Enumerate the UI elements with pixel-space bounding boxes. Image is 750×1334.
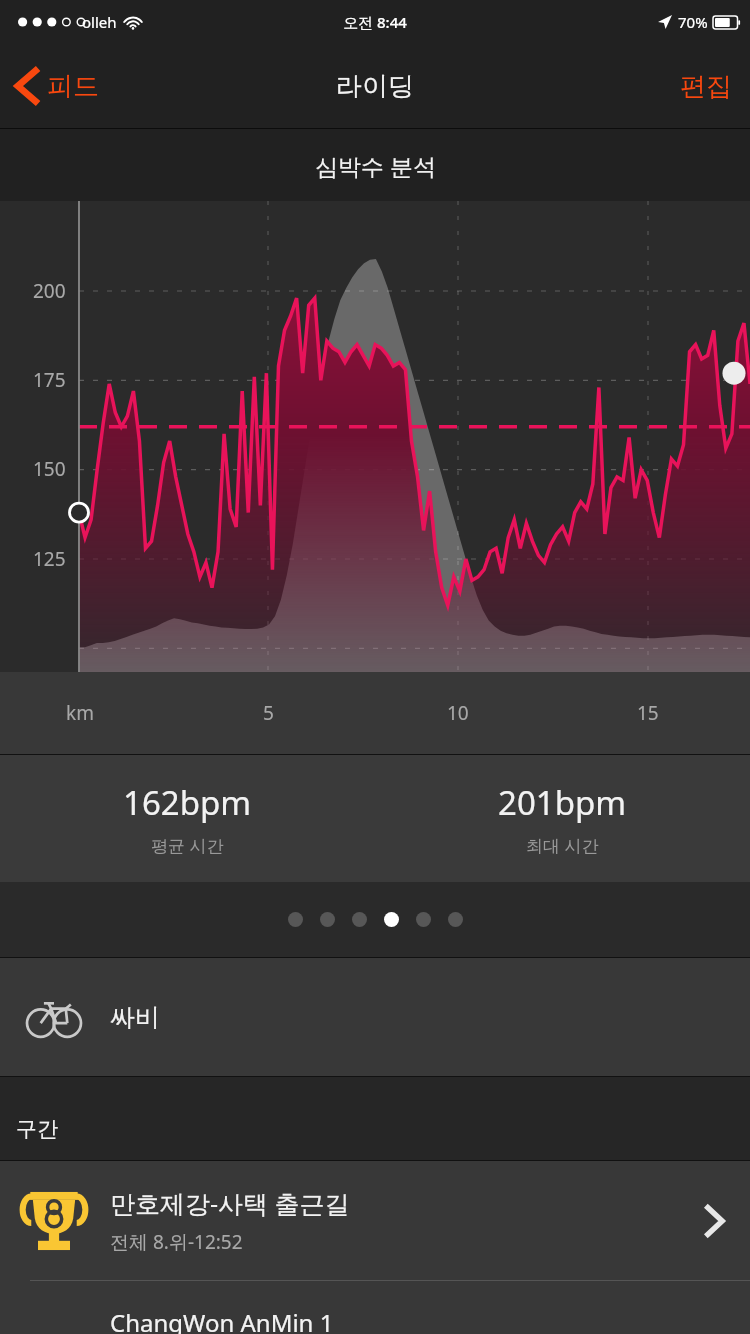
button[interactable]: 162bpm <box>0 755 375 882</box>
staticText: km <box>66 700 94 726</box>
staticText: 만호제강-사택 출근길 <box>110 1186 350 1220</box>
staticText: 피드 <box>47 70 99 103</box>
button[interactable]: 편집 <box>662 58 750 115</box>
staticText: ChangWon AnMin 1 <box>110 1306 334 1334</box>
staticText: 200 <box>33 278 66 304</box>
staticText: 구간 <box>16 1116 58 1142</box>
button[interactable]: 피드 <box>0 59 113 113</box>
other: Bike activity <box>26 999 82 1035</box>
staticText: 162bpm <box>123 780 252 825</box>
staticText: 심박수 분석 <box>315 150 436 181</box>
staticText: 125 <box>33 546 66 572</box>
staticText: 15 <box>637 700 659 726</box>
button[interactable]: 만호제강-사택 출근길 <box>0 1161 750 1280</box>
staticText: 싸비 <box>110 1002 160 1033</box>
staticText: 라이딩 <box>336 70 414 103</box>
staticText: 10 <box>447 700 469 726</box>
staticText: 201bpm <box>498 780 627 825</box>
staticText: olleh <box>82 12 117 32</box>
staticText: 최대 시간 <box>526 834 599 857</box>
staticText: 175 <box>33 367 66 393</box>
staticText: 오전 8:44 <box>343 12 407 32</box>
staticText: 70% <box>678 12 708 32</box>
button[interactable]: 201bpm <box>375 755 750 882</box>
staticText: 5 <box>263 700 274 726</box>
staticText: 평균 시간 <box>151 834 224 857</box>
button[interactable]: Bike activity <box>0 958 750 1076</box>
button[interactable]: ChangWon AnMin 1 <box>0 1280 750 1334</box>
staticText: 150 <box>33 456 66 482</box>
staticText: 편집 <box>680 70 732 103</box>
staticText: 전체 8.위-12:52 <box>110 1229 243 1255</box>
